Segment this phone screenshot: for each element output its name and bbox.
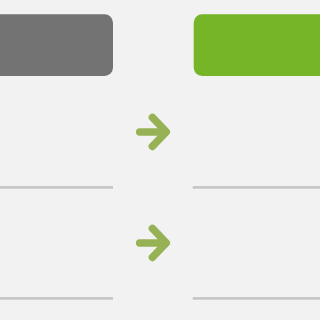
button[interactable]: Replaced by xyxy=(113,187,194,298)
button[interactable]: New value xyxy=(194,14,320,76)
button[interactable]: Replaced by xyxy=(113,76,194,187)
button[interactable]: Previous entry xyxy=(0,187,113,298)
button[interactable]: New entry xyxy=(194,187,320,298)
button[interactable]: Previous entry xyxy=(0,76,113,187)
button[interactable]: New entry xyxy=(194,76,320,187)
button[interactable]: Previous value xyxy=(0,14,113,76)
